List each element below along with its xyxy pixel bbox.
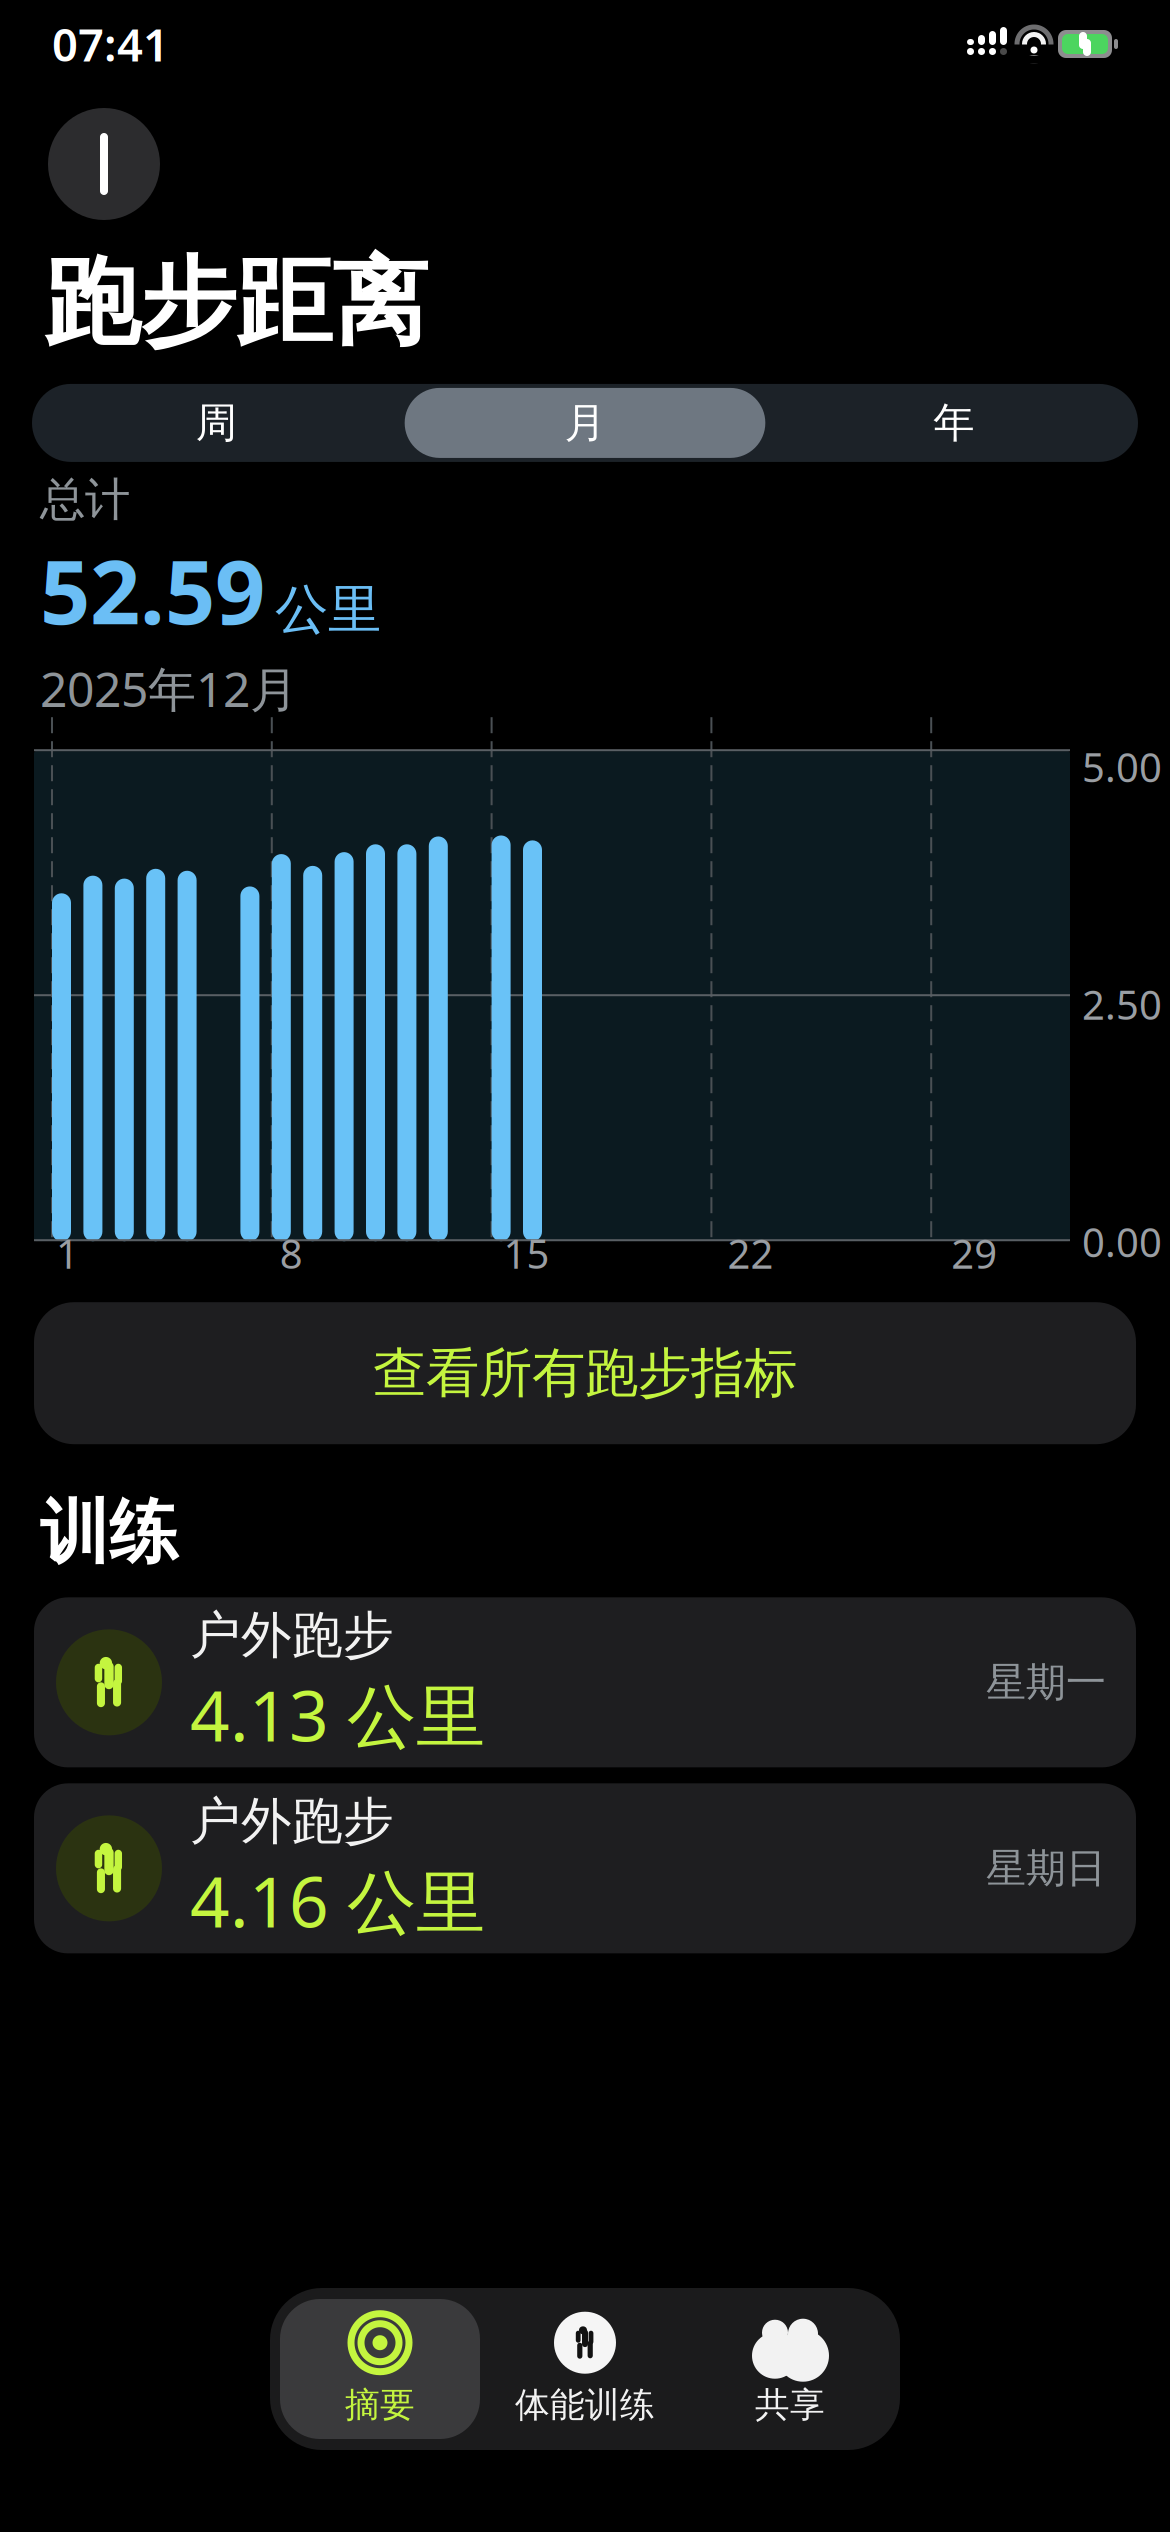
staticText: 训练 (40, 1490, 178, 1575)
staticText: 星期日 (986, 1844, 1106, 1893)
staticText: 月 (564, 397, 605, 448)
button[interactable]: 查看所有跑步指标 (34, 1302, 1136, 1444)
staticText: 29 (951, 1227, 997, 1280)
staticText: 公里 (275, 577, 381, 642)
staticText: 22 (727, 1227, 773, 1280)
staticText: 总计 (40, 472, 130, 528)
button[interactable]: 体能训练 (480, 2299, 690, 2439)
staticText: 户外跑步 (190, 1790, 394, 1852)
staticText: 2.50 (1082, 978, 1162, 1031)
staticText: 体能训练 (515, 2384, 655, 2426)
staticText: 52.59 (40, 532, 265, 648)
staticText: 摘要 (345, 2384, 415, 2426)
staticText: 年 (933, 397, 974, 448)
button[interactable]: 户外跑步 (34, 1597, 1136, 1767)
button[interactable]: 返回 (48, 108, 160, 220)
staticText: 4.16 公里 (190, 1854, 485, 1946)
staticText: 8 (280, 1227, 303, 1280)
staticText: 星期一 (986, 1658, 1106, 1707)
staticText: 0.00 (1082, 1215, 1162, 1268)
staticText: 07:41 (52, 14, 169, 74)
staticText: 1 (56, 1227, 79, 1280)
staticText: 15 (504, 1227, 550, 1280)
staticText: 跑步距离 (44, 244, 428, 362)
button[interactable]: 摘要 (280, 2299, 480, 2439)
staticText: 户外跑步 (190, 1604, 394, 1666)
button[interactable]: 月 (401, 384, 769, 462)
staticText: 查看所有跑步指标 (373, 1340, 797, 1406)
button[interactable]: 共享 (690, 2299, 890, 2439)
staticText: 5.00 (1082, 740, 1162, 793)
staticText: 共享 (755, 2384, 825, 2426)
button[interactable]: 年 (769, 384, 1138, 462)
staticText: 周 (196, 397, 237, 448)
button[interactable]: 户外跑步 (34, 1783, 1136, 1953)
button[interactable]: 周 (32, 384, 401, 462)
staticText: 4.13 公里 (190, 1668, 485, 1760)
staticText: 2025年12月 (40, 656, 298, 720)
